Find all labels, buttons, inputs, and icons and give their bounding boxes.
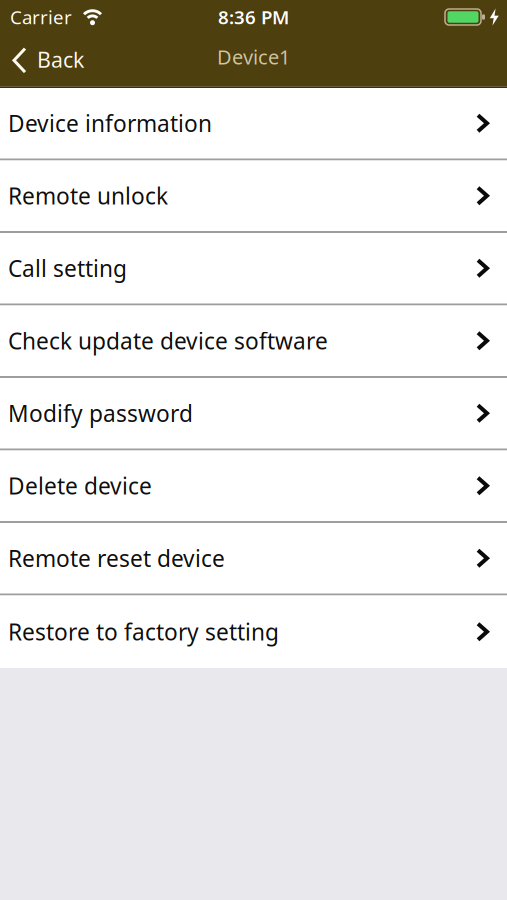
button[interactable]: Call setting [0, 233, 507, 305]
staticText: Device1 [217, 44, 290, 70]
staticText: Remote unlock [8, 181, 168, 211]
staticText: Modify password [8, 398, 193, 428]
staticText: Device information [8, 108, 212, 138]
staticText: Back [37, 45, 84, 73]
button[interactable]: Delete device [0, 450, 507, 523]
staticText: Remote reset device [8, 543, 225, 573]
button[interactable]: Restore to factory setting [0, 595, 507, 668]
staticText: Carrier [10, 5, 72, 29]
staticText: Restore to factory setting [8, 617, 279, 647]
button[interactable]: Remote unlock [0, 160, 507, 233]
staticText: Call setting [8, 253, 127, 283]
button[interactable]: Back [0, 41, 84, 74]
staticText: Check update device software [8, 326, 328, 356]
button[interactable]: Modify password [0, 378, 507, 450]
button[interactable]: Remote reset device [0, 523, 507, 595]
button[interactable]: Check update device software [0, 305, 507, 378]
staticText: Delete device [8, 471, 152, 501]
button[interactable]: Device information [0, 88, 507, 160]
staticText: 8:36 PM [218, 5, 289, 29]
